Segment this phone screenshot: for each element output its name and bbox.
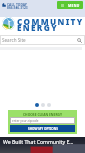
button[interactable]: Slide 2: [41, 103, 45, 107]
staticText: CALL TODAY 866.946.3123: [7, 2, 28, 10]
button[interactable]: CALL TODAY 866.946.3123: [2, 2, 28, 10]
staticText: Search Site: [2, 37, 26, 43]
button[interactable]: Search Site: [0, 35, 85, 45]
staticText: MENU: [68, 3, 80, 8]
staticText: CHOOSE CLEAN ENERGY: [10, 112, 75, 116]
button[interactable]: Slide 1: [35, 103, 39, 107]
staticText: SHOW MY OPTIONS: [28, 127, 58, 131]
button[interactable]: MENU: [57, 1, 83, 9]
staticText: COMMUNITY ENERGY: [17, 16, 84, 33]
staticText: We Built That Community E…: [3, 138, 74, 145]
button[interactable]: SHOW MY OPTIONS: [10, 125, 75, 132]
button[interactable]: Slide 3: [47, 103, 51, 107]
staticText: enter your zipcode: [12, 119, 39, 123]
button[interactable]: enter your zipcode: [10, 117, 75, 124]
